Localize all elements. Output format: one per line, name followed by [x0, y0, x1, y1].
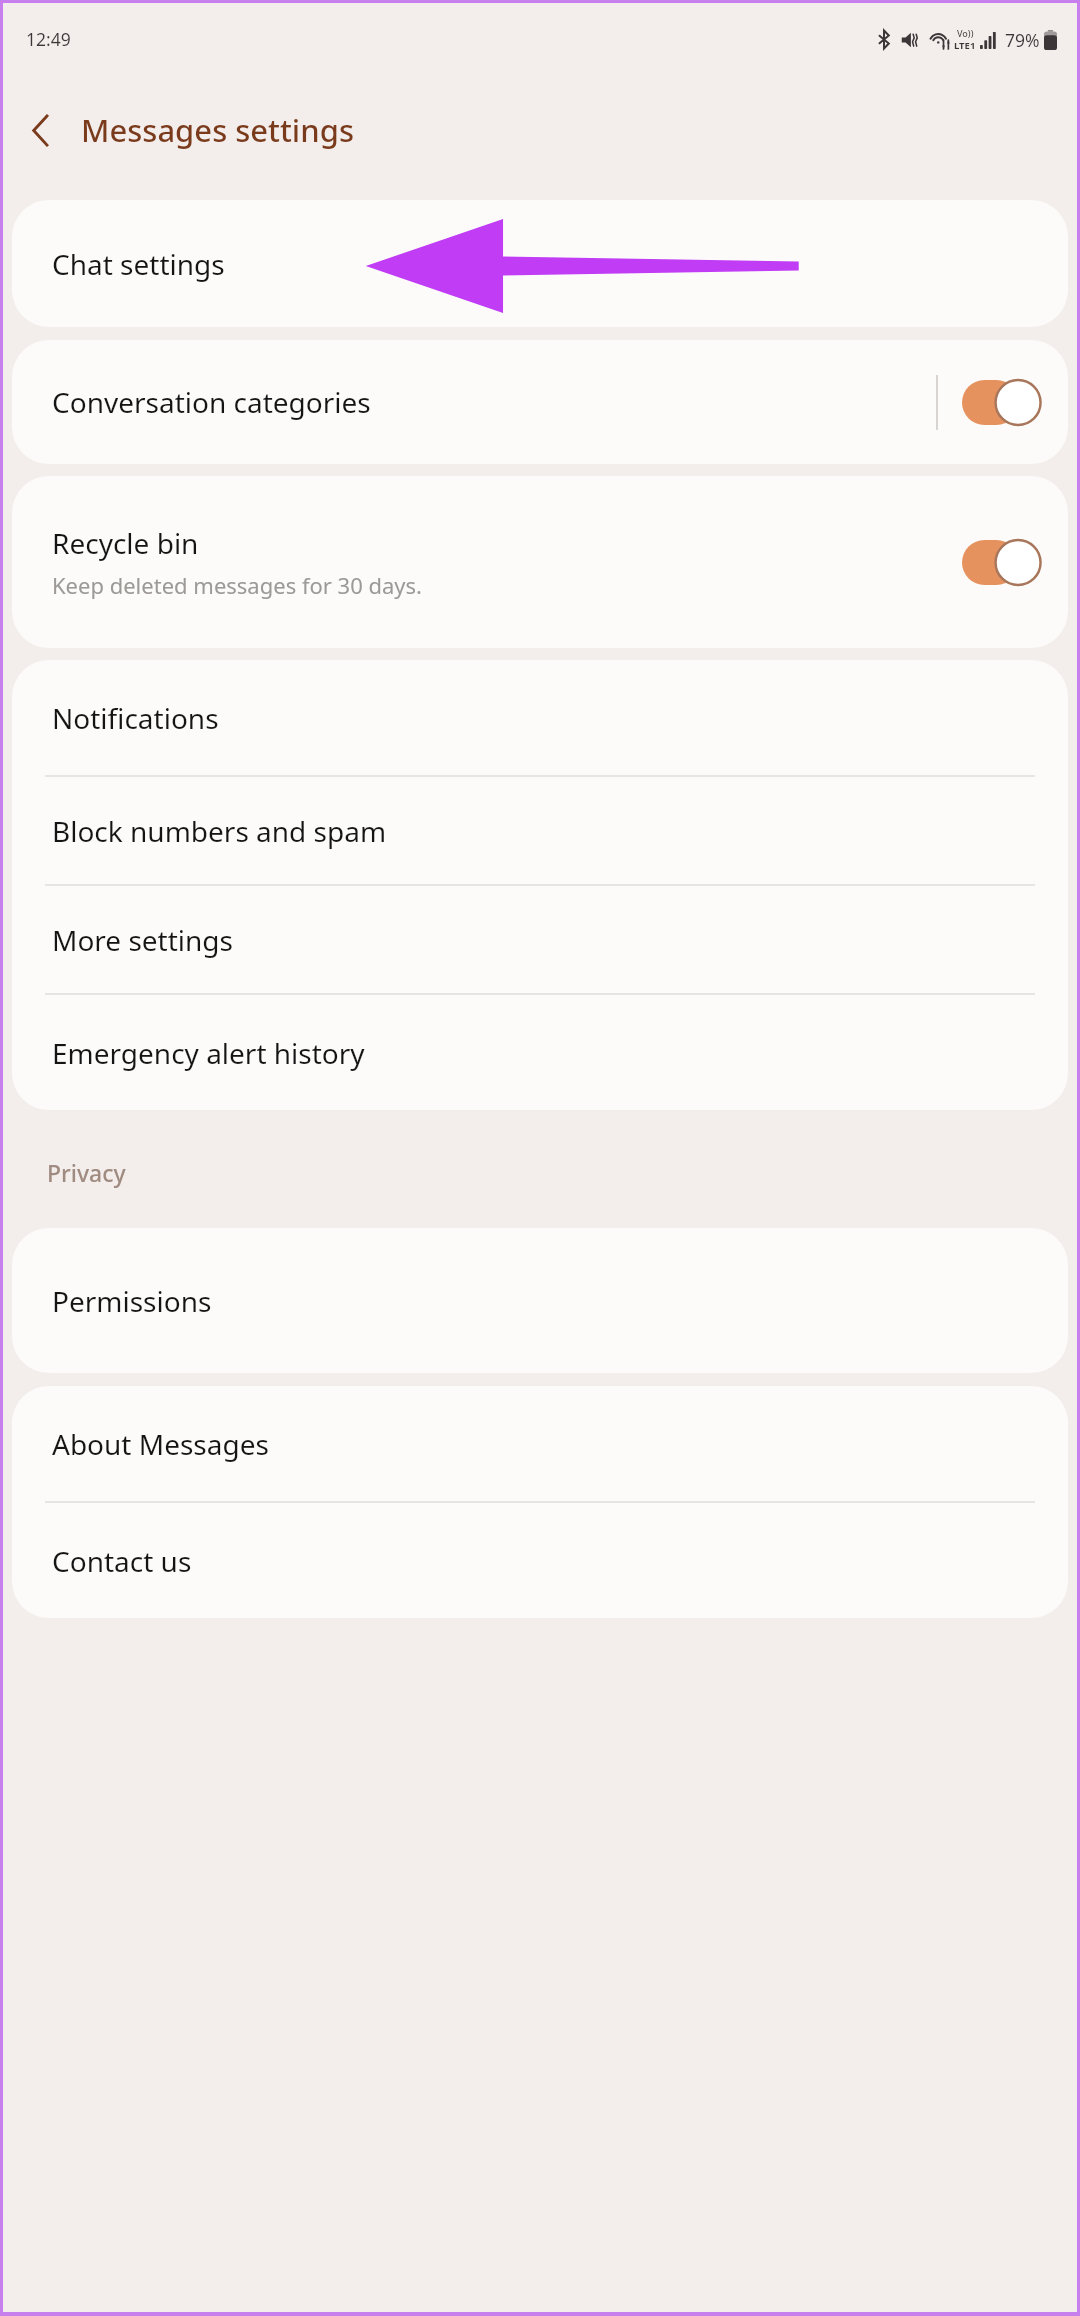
- staticText: Notifications: [52, 699, 219, 737]
- button[interactable]: Toggle: [962, 380, 1041, 425]
- button[interactable]: Emergency alert history: [12, 995, 1068, 1110]
- staticText: Block numbers and spam: [52, 812, 387, 850]
- button[interactable]: Block numbers and spam: [12, 777, 1068, 884]
- staticText: LTE1: [954, 39, 976, 52]
- staticText: 79%: [1005, 28, 1040, 52]
- staticText: Recycle bin: [52, 524, 199, 562]
- button[interactable]: Back: [3, 93, 77, 167]
- button[interactable]: Contact us: [12, 1503, 1068, 1618]
- staticText: More settings: [52, 921, 233, 959]
- staticText: Privacy: [47, 1157, 126, 1188]
- button[interactable]: Permissions: [12, 1228, 1068, 1373]
- button[interactable]: More settings: [12, 886, 1068, 993]
- staticText: About Messages: [52, 1425, 269, 1463]
- staticText: Messages settings: [81, 109, 354, 151]
- staticText: Conversation categories: [52, 383, 371, 421]
- button[interactable]: Conversation categories: [12, 340, 1068, 464]
- button[interactable]: About Messages: [12, 1386, 1068, 1501]
- staticText: Contact us: [52, 1542, 192, 1580]
- staticText: Permissions: [52, 1282, 212, 1320]
- staticText: Emergency alert history: [52, 1034, 365, 1072]
- staticText: Vo)): [957, 27, 974, 39]
- button[interactable]: Chat settings: [12, 200, 1068, 327]
- staticText: 12:49: [26, 27, 71, 51]
- button[interactable]: Recycle bin: [12, 476, 1068, 648]
- button[interactable]: Notifications: [12, 660, 1068, 775]
- button[interactable]: Toggle: [962, 540, 1041, 585]
- staticText: Chat settings: [52, 245, 225, 283]
- staticText: Keep deleted messages for 30 days.: [52, 570, 422, 600]
